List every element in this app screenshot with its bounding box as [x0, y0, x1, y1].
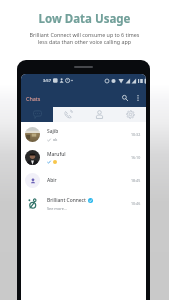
staticText: Maruful — [47, 151, 66, 158]
button[interactable]: Settings — [115, 107, 146, 122]
button[interactable]: Sajib — [21, 123, 146, 146]
staticText: 10:32 — [131, 132, 141, 137]
staticText: Brilliant Connect will consume up to 6 t… — [6, 31, 163, 46]
staticText: Brilliant Connect — [47, 197, 86, 204]
button[interactable]: More options — [134, 94, 142, 102]
staticText: 3:57 — [43, 78, 51, 83]
button[interactable]: Search — [120, 93, 130, 103]
staticText: ok — [53, 137, 58, 142]
staticText: 18:45 — [131, 178, 141, 183]
staticText: Sajib — [47, 128, 59, 135]
button[interactable]: Maruful — [21, 146, 146, 169]
button[interactable]: Brilliant Connect — [21, 192, 146, 215]
button[interactable]: Chats — [26, 95, 41, 102]
button[interactable]: Contacts — [84, 107, 115, 122]
staticText: 10:46 — [131, 201, 141, 206]
staticText: See more... — [47, 206, 67, 211]
button[interactable]: Abir — [21, 169, 146, 192]
staticText: Low Data Usage — [0, 11, 169, 27]
staticText: 16:10 — [131, 155, 141, 160]
staticText: Abir — [47, 177, 57, 184]
button[interactable]: Calls — [53, 107, 84, 122]
